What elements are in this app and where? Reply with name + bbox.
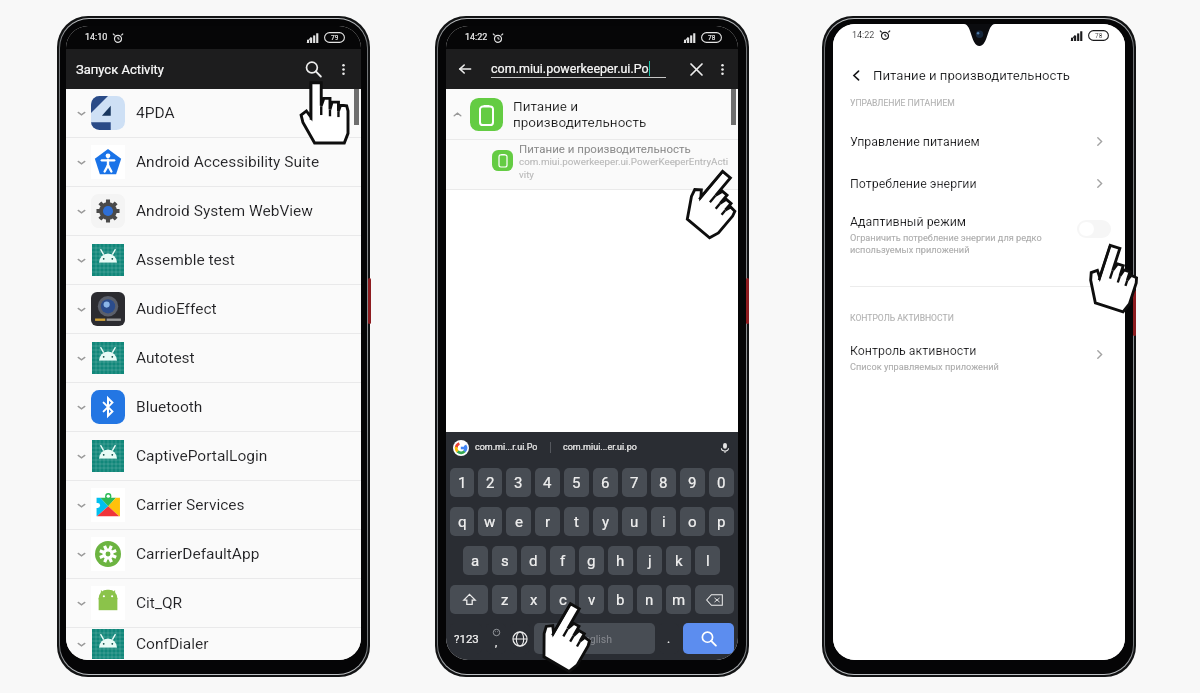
- button[interactable]: 1: [450, 468, 474, 497]
- button[interactable]: CaptivePortalLogin: [66, 432, 361, 480]
- staticText: n: [645, 591, 654, 609]
- staticText: Carrier Services: [136, 496, 245, 514]
- button[interactable]: Shift: [450, 585, 488, 614]
- button[interactable]: 4PDA: [66, 89, 361, 137]
- button[interactable]: 9: [680, 468, 705, 497]
- button[interactable]: Search: [300, 56, 326, 82]
- button[interactable]: p: [709, 507, 734, 536]
- staticText: c: [559, 591, 567, 609]
- staticText: v: [588, 591, 596, 609]
- button[interactable]: t: [564, 507, 589, 536]
- staticText: Bluetooth: [136, 398, 203, 416]
- staticText: f: [560, 552, 566, 570]
- staticText: s: [501, 552, 509, 570]
- button[interactable]: Android System WebView: [66, 187, 361, 235]
- button[interactable]: Адаптивный режим: [833, 214, 1125, 256]
- button[interactable]: Питание и производительность: [446, 140, 738, 189]
- button[interactable]: o: [680, 507, 705, 536]
- button[interactable]: Управление питанием: [833, 128, 1125, 154]
- button[interactable]: Change language: [510, 623, 530, 654]
- button[interactable]: 5: [564, 468, 589, 497]
- staticText: Потребление энергии: [850, 176, 1093, 191]
- staticText: k: [675, 552, 683, 570]
- button[interactable]: 7: [622, 468, 647, 497]
- staticText: p: [717, 513, 726, 531]
- button[interactable]: k: [666, 546, 691, 575]
- button[interactable]: Carrier Services: [66, 481, 361, 529]
- button[interactable]: 0: [709, 468, 734, 497]
- button[interactable]: 4: [535, 468, 560, 497]
- staticText: Питание и производительность: [873, 68, 1070, 83]
- button[interactable]: y: [593, 507, 618, 536]
- button[interactable]: m: [666, 585, 691, 614]
- staticText: ?123: [454, 632, 479, 645]
- staticText: 0: [717, 474, 726, 492]
- button[interactable]: Питание и производительность: [446, 89, 738, 139]
- button[interactable]: b: [608, 585, 633, 614]
- staticText: Адаптивный режим: [850, 214, 966, 229]
- staticText: Android Accessibility Suite: [136, 153, 320, 171]
- button[interactable]: e: [506, 507, 531, 536]
- button[interactable]: Потребление энергии: [833, 170, 1125, 196]
- staticText: 78: [1095, 32, 1103, 40]
- button[interactable]: n: [637, 585, 662, 614]
- button[interactable]: 6: [593, 468, 618, 497]
- button[interactable]: Autotest: [66, 334, 361, 382]
- button[interactable]: Search: [683, 623, 734, 654]
- button[interactable]: c: [550, 585, 575, 614]
- staticText: ConfDialer: [136, 635, 209, 653]
- button[interactable]: More options: [333, 59, 353, 79]
- button[interactable]: Adaptive mode toggle: [1077, 220, 1111, 238]
- button[interactable]: d: [521, 546, 546, 575]
- button[interactable]: x: [521, 585, 546, 614]
- button[interactable]: Bluetooth: [66, 383, 361, 431]
- button[interactable]: ?123: [450, 623, 482, 654]
- button[interactable]: English: [534, 623, 655, 654]
- button[interactable]: i: [651, 507, 676, 536]
- button[interactable]: Clear: [685, 58, 707, 80]
- button[interactable]: r: [535, 507, 560, 536]
- staticText: com.miui...er.ui.po: [563, 442, 637, 453]
- button[interactable]: CarrierDefaultApp: [66, 530, 361, 578]
- staticText: u: [630, 513, 639, 531]
- button[interactable]: j: [637, 546, 662, 575]
- button[interactable]: Android Accessibility Suite: [66, 138, 361, 186]
- staticText: .: [667, 632, 671, 646]
- button[interactable]: q: [450, 507, 474, 536]
- button[interactable]: z: [492, 585, 517, 614]
- button[interactable]: Backspace: [695, 585, 734, 614]
- button[interactable]: u: [622, 507, 647, 536]
- staticText: КОНТРОЛЬ АКТИВНОСТИ: [850, 313, 954, 323]
- staticText: b: [616, 591, 625, 609]
- button[interactable]: l: [695, 546, 720, 575]
- button[interactable]: Контроль активности: [833, 343, 1125, 372]
- button[interactable]: Back: [846, 65, 866, 85]
- staticText: e: [515, 513, 523, 531]
- button[interactable]: g: [579, 546, 604, 575]
- button[interactable]: a: [463, 546, 488, 575]
- button[interactable]: s: [492, 546, 517, 575]
- button[interactable]: h: [608, 546, 633, 575]
- button[interactable]: More options: [713, 60, 731, 78]
- button[interactable]: AudioEffect: [66, 285, 361, 333]
- staticText: Список управляемых приложений: [850, 361, 999, 372]
- staticText: 1: [458, 474, 467, 492]
- button[interactable]: 8: [651, 468, 676, 497]
- button[interactable]: 3: [506, 468, 531, 497]
- button[interactable]: .: [659, 623, 679, 654]
- button[interactable]: ConfDialer: [66, 628, 361, 660]
- staticText: g: [587, 552, 596, 570]
- staticText: Autotest: [136, 349, 195, 367]
- button[interactable]: 2: [478, 468, 502, 497]
- button[interactable]: ,: [486, 623, 506, 654]
- staticText: 78: [708, 34, 716, 42]
- staticText: h: [616, 552, 625, 570]
- staticText: 8: [659, 474, 668, 492]
- button[interactable]: w: [478, 507, 502, 536]
- button[interactable]: f: [550, 546, 575, 575]
- button[interactable]: Assemble test: [66, 236, 361, 284]
- button[interactable]: Back: [454, 58, 476, 80]
- button[interactable]: Cit_QR: [66, 579, 361, 627]
- button[interactable]: v: [579, 585, 604, 614]
- staticText: Запуск Activity: [76, 62, 164, 77]
